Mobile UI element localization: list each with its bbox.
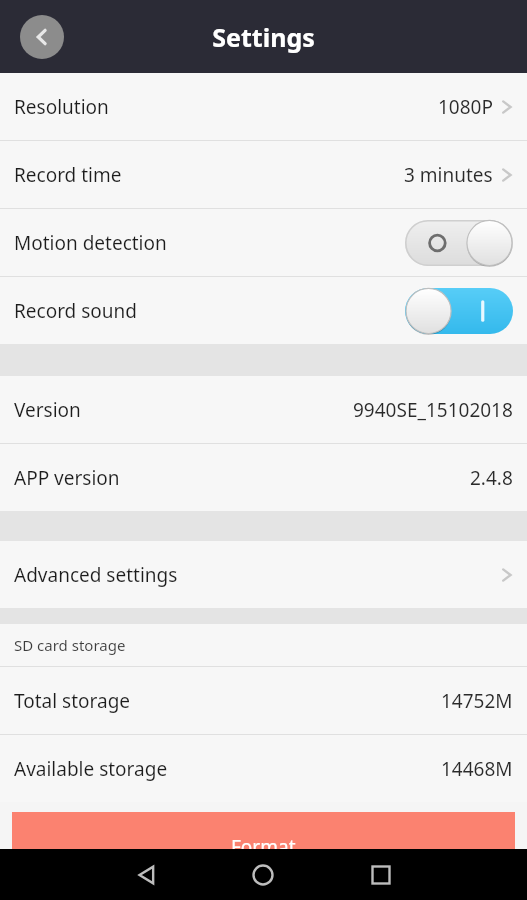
staticText: Record sound <box>14 298 138 324</box>
button[interactable]: Home <box>239 851 287 899</box>
button[interactable]: Back <box>123 851 171 899</box>
staticText: Advanced settings <box>14 562 178 588</box>
staticText: Resolution <box>14 94 109 120</box>
staticText: 3 minutes <box>404 162 493 188</box>
button[interactable]: On <box>405 288 513 334</box>
button[interactable]: Resolution <box>0 73 527 140</box>
button[interactable]: Record time <box>0 141 527 208</box>
staticText: Available storage <box>14 756 168 782</box>
staticText: 2.4.8 <box>470 465 513 491</box>
button[interactable]: Back <box>20 15 64 59</box>
button[interactable]: Motion detection <box>0 209 527 276</box>
staticText: Motion detection <box>14 230 167 256</box>
button[interactable]: Record sound <box>0 277 527 344</box>
button[interactable]: Advanced settings <box>0 541 527 608</box>
staticText: APP version <box>14 465 120 491</box>
button[interactable]: Available storage <box>0 735 527 802</box>
staticText: Version <box>14 397 81 423</box>
staticText: SD card storage <box>14 635 126 655</box>
staticText: 14468M <box>441 756 513 782</box>
staticText: 14752M <box>441 688 513 714</box>
button[interactable]: Version <box>0 376 527 443</box>
button[interactable]: APP version <box>0 444 527 511</box>
staticText: Settings <box>212 20 315 54</box>
staticText: 1080P <box>438 94 493 120</box>
staticText: 9940SE_15102018 <box>353 397 513 423</box>
button[interactable]: Format <box>12 812 515 849</box>
staticText: Total storage <box>14 688 131 714</box>
staticText: Record time <box>14 162 122 188</box>
staticText: Format <box>231 834 296 860</box>
button[interactable]: Recents <box>357 851 405 899</box>
button[interactable]: Off <box>405 220 513 266</box>
button[interactable]: Total storage <box>0 667 527 734</box>
